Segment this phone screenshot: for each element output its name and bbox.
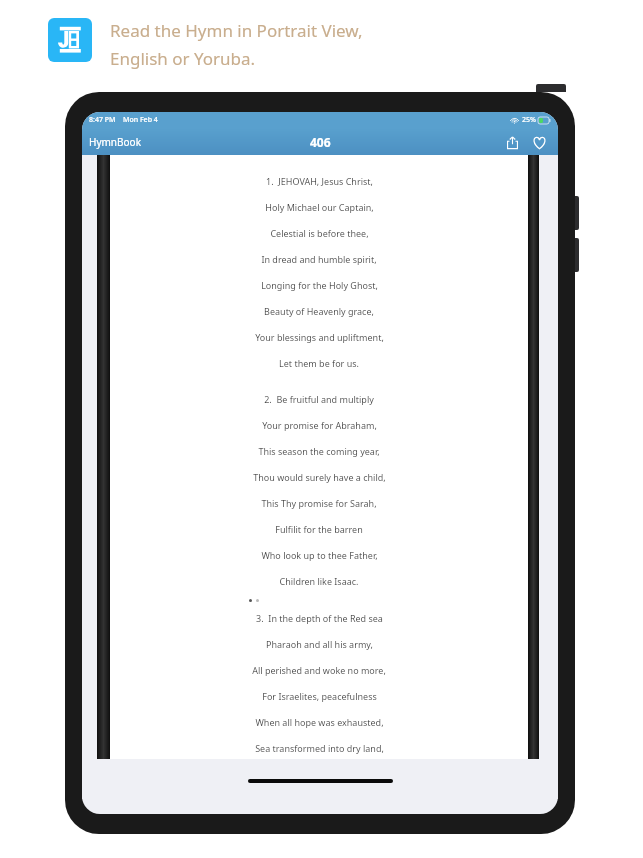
staticText: Who look up to thee Father, xyxy=(261,549,378,561)
staticText: Mon Feb 4 xyxy=(123,115,158,125)
staticText: Children like Isaac. xyxy=(279,575,359,587)
staticText: Your promise for Abraham, xyxy=(262,419,377,431)
staticText: All perished and woke no more, xyxy=(252,664,386,676)
staticText: This season the coming year, xyxy=(258,445,380,457)
staticText: 25% xyxy=(522,115,536,125)
staticText: 3. In the depth of the Red sea xyxy=(256,612,383,624)
staticText: Holy Michael our Captain, xyxy=(265,201,374,213)
button[interactable]: HymnBook xyxy=(89,135,141,149)
staticText: Beauty of Heavenly grace, xyxy=(264,305,374,317)
staticText: This Thy promise for Sarah, xyxy=(261,497,377,509)
button[interactable]: Favorite xyxy=(528,131,550,153)
staticText: HymnBook xyxy=(89,135,141,149)
staticText: Read the Hymn in Portrait View, xyxy=(110,19,363,42)
staticText: 406 xyxy=(310,134,331,150)
staticText: With such powers, xyxy=(280,768,358,780)
staticText: In dread and humble spirit, xyxy=(261,253,377,265)
staticText: Fulfilit for the barren xyxy=(275,523,363,535)
staticText: English or Yoruba. xyxy=(110,47,256,70)
staticText: When all hope was exhausted, xyxy=(255,716,384,728)
staticText: Your blessings and upliftment, xyxy=(255,331,384,343)
staticText: Thou would surely have a child, xyxy=(253,471,386,483)
button[interactable]: Share xyxy=(501,131,523,153)
staticText: For Israelites, peacefulness xyxy=(262,690,377,702)
staticText: Pharaoh and all his army, xyxy=(266,638,373,650)
staticText: Let them be for us. xyxy=(279,357,359,369)
staticText: 2. Be fruitful and multiply xyxy=(264,393,374,405)
staticText: 8:47 PM xyxy=(89,115,116,125)
staticText: Longing for the Holy Ghost, xyxy=(261,279,378,291)
button[interactable]: HymnBook app icon xyxy=(48,18,92,62)
staticText: Celestial is before thee, xyxy=(270,227,369,239)
button[interactable]: 1. JEHOVAH, Jesus Christ, xyxy=(110,155,528,799)
staticText: 1. JEHOVAH, Jesus Christ, xyxy=(266,175,373,187)
staticText: Sea transformed into dry land, xyxy=(255,742,384,754)
